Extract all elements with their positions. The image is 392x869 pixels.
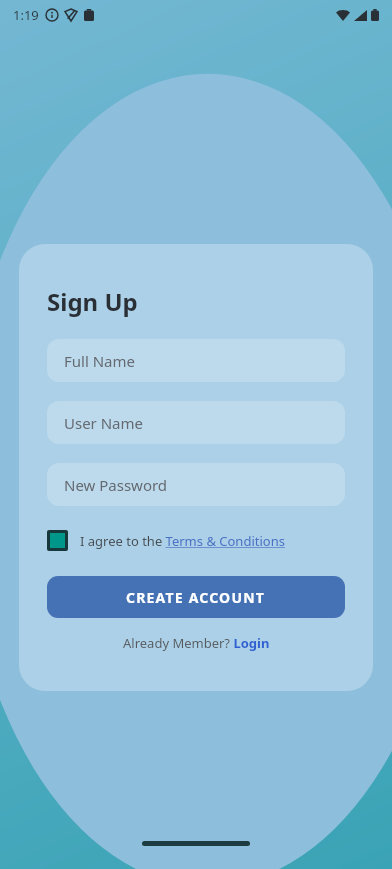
other: Home bbox=[142, 841, 250, 846]
button[interactable]: New Password bbox=[47, 463, 345, 506]
staticText: Sign Up bbox=[47, 285, 138, 318]
staticText: User Name bbox=[64, 413, 144, 433]
staticText: Already Member? Login bbox=[123, 634, 270, 652]
button[interactable]: CREATE ACCOUNT bbox=[47, 576, 345, 618]
staticText: New Password bbox=[64, 475, 168, 495]
button[interactable]: Full Name bbox=[47, 339, 345, 382]
staticText: 1:19 bbox=[13, 6, 39, 24]
staticText: Full Name bbox=[64, 351, 135, 371]
button[interactable]: Already Member? Login bbox=[117, 631, 276, 655]
staticText: CREATE ACCOUNT bbox=[126, 588, 266, 607]
button[interactable]: I agree to the Terms & Conditions bbox=[47, 528, 285, 553]
staticText: I agree to the Terms & Conditions bbox=[80, 532, 285, 550]
button[interactable]: User Name bbox=[47, 401, 345, 444]
